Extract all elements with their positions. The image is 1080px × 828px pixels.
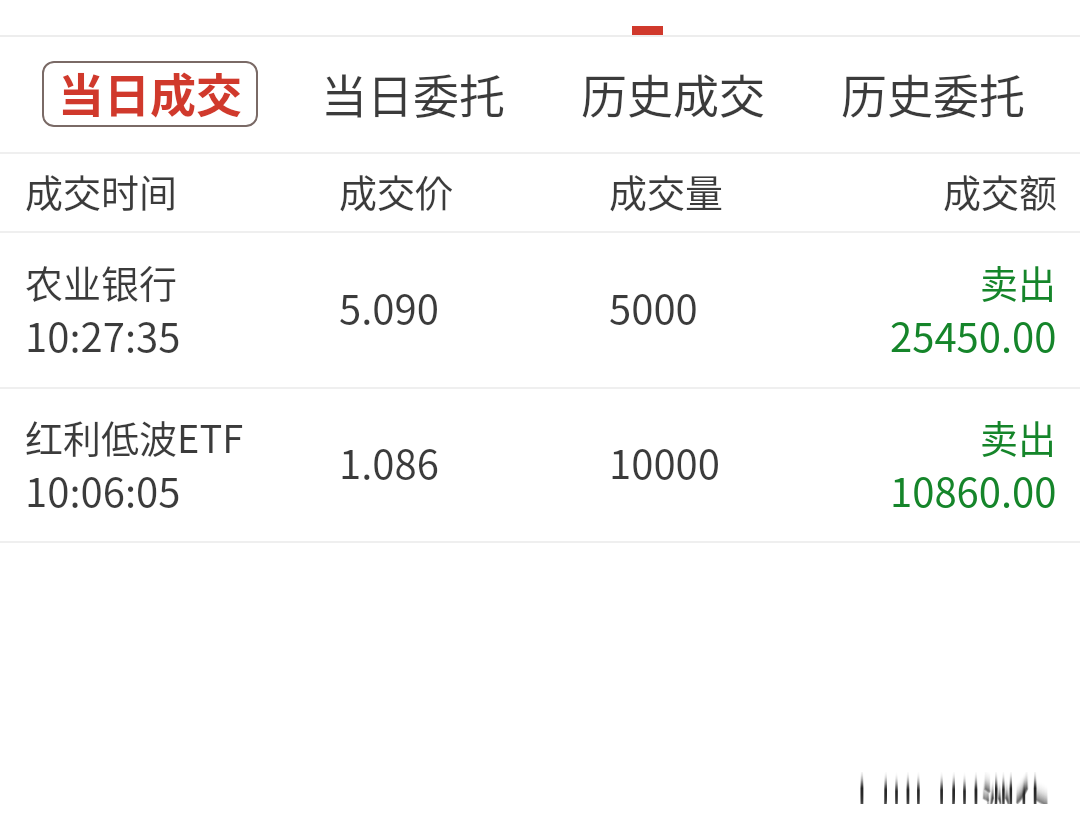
staticText: 丨川凵川洲仆目 <box>845 772 1070 801</box>
staticText: 丨川凵川洲仆目 <box>845 774 1070 804</box>
staticText: 丨川凵川洲仆目 <box>845 772 1070 796</box>
staticText: 10860.00 <box>890 461 1057 519</box>
button[interactable]: 历史成交 <box>543 62 803 128</box>
staticText: 丨川凵川洲仆目 <box>845 772 1070 791</box>
staticText: 丨川凵川洲仆目 <box>845 772 1070 795</box>
staticText: 历史成交 <box>581 60 765 126</box>
staticText: 丨川凵川洲仆目 <box>845 772 1070 800</box>
staticText: 丨川凵川洲仆目 <box>845 772 1070 797</box>
staticText: 当日成交 <box>58 61 242 125</box>
staticText: 丨川凵川洲仆目 <box>845 772 1070 790</box>
staticText: 丨川凵川洲仆目 <box>845 772 1070 794</box>
staticText: 丨川凵川洲仆目 <box>845 772 1070 802</box>
staticText: 10:27:35 <box>25 306 181 364</box>
staticText: 红利低波ETF <box>25 409 244 464</box>
button[interactable]: 历史委托 <box>803 62 1063 128</box>
staticText: 农业银行 <box>25 254 178 309</box>
staticText: 10000 <box>609 433 720 491</box>
staticText: 丨川凵川洲仆目 <box>845 772 1070 793</box>
staticText: 丨川凵川洲仆目 <box>845 772 1070 786</box>
staticText: 丨川凵川洲仆目 <box>845 773 1070 804</box>
button[interactable]: 红利低波ETF <box>0 389 1080 541</box>
staticText: 丨川凵川洲仆目 <box>845 772 1070 789</box>
staticText: 成交时间 <box>25 163 178 218</box>
button[interactable]: 当日委托 <box>283 62 543 128</box>
staticText: 成交量 <box>609 163 724 218</box>
staticText: 当日委托 <box>321 60 505 126</box>
button[interactable]: 当日成交 <box>42 61 258 127</box>
staticText: 5000 <box>609 278 698 336</box>
staticText: 丨川凵川洲仆目 <box>845 775 1070 804</box>
staticText: 历史委托 <box>841 60 1025 126</box>
staticText: 25450.00 <box>890 306 1057 364</box>
staticText: 10:06:05 <box>25 461 181 519</box>
staticText: 1.086 <box>339 433 439 491</box>
staticText: 成交价 <box>339 163 454 218</box>
staticText: 丨川凵川洲仆目 <box>845 772 1070 792</box>
staticText: 成交额 <box>942 163 1057 218</box>
staticText: 5.090 <box>339 278 439 336</box>
staticText: 丨川凵川洲仆目 <box>845 772 1070 787</box>
button[interactable]: 农业银行 <box>0 233 1080 387</box>
staticText: 丨川凵川洲仆目 <box>845 772 1070 785</box>
staticText: 丨川凵川洲仆目 <box>845 772 1070 798</box>
staticText: 丨川凵川洲仆目 <box>845 772 1070 804</box>
staticText: 丨川凵川洲仆目 <box>845 772 1070 788</box>
staticText: 卖出 <box>980 254 1057 309</box>
staticText: 丨川凵川洲仆目 <box>845 772 1070 803</box>
staticText: 丨川凵川洲仆目 <box>845 772 1070 784</box>
staticText: 丨川凵川洲仆目 <box>845 777 1070 804</box>
staticText: 丨川凵川洲仆目 <box>845 776 1070 804</box>
staticText: 丨川凵川洲仆目 <box>845 772 1070 799</box>
staticText: 卖出 <box>980 409 1057 464</box>
